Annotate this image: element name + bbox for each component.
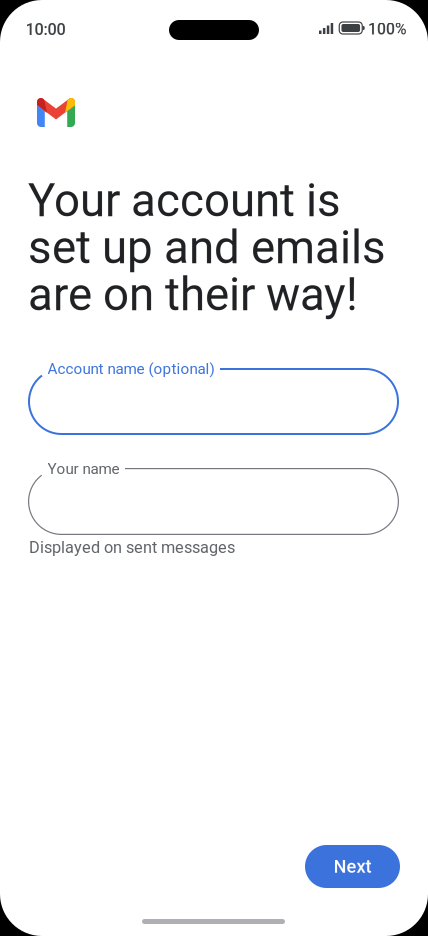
staticText: set up and emails	[28, 221, 386, 274]
staticText: 100%	[368, 20, 407, 38]
staticText: 10:00	[25, 20, 65, 39]
staticText: Your account is	[28, 174, 341, 227]
staticText: Your name	[47, 460, 119, 478]
staticText: Account name (optional)	[47, 360, 214, 378]
button[interactable]: Next	[305, 845, 400, 888]
staticText: Next	[333, 856, 371, 877]
staticText: Displayed on sent messages	[29, 538, 235, 557]
staticText: are on their way!	[28, 268, 358, 321]
